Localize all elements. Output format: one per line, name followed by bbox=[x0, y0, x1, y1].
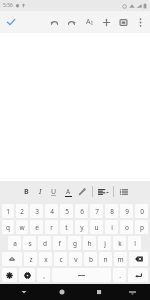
staticText: e bbox=[35, 223, 39, 232]
button[interactable]: 3 bbox=[30, 204, 43, 218]
staticText: a bbox=[13, 239, 17, 248]
button[interactable]: 5 bbox=[60, 204, 73, 218]
button[interactable]: Text color bbox=[61, 181, 75, 202]
staticText: 5 bbox=[65, 207, 69, 216]
button[interactable]: t bbox=[60, 220, 73, 234]
button[interactable]: Home bbox=[49, 284, 74, 300]
button[interactable]: s bbox=[23, 236, 36, 250]
button[interactable]: Back bbox=[12, 284, 36, 300]
button[interactable]: More options bbox=[132, 11, 148, 33]
button[interactable]: f bbox=[53, 236, 66, 250]
button[interactable]: l bbox=[128, 236, 141, 250]
button[interactable]: Add bbox=[98, 11, 115, 33]
staticText: n bbox=[103, 255, 108, 264]
staticText: , bbox=[43, 271, 45, 280]
button[interactable]: x bbox=[39, 252, 52, 266]
staticText: 5:56 bbox=[3, 2, 13, 9]
button[interactable]: y bbox=[75, 220, 88, 234]
button[interactable]: List bbox=[117, 181, 131, 202]
button[interactable]: 2 bbox=[16, 204, 28, 218]
button[interactable]: Undo bbox=[46, 11, 63, 33]
button[interactable]: 7 bbox=[90, 204, 103, 218]
button[interactable]: q bbox=[2, 220, 14, 234]
staticText: I bbox=[91, 20, 93, 27]
button[interactable]: 4 bbox=[45, 204, 58, 218]
button[interactable]: o bbox=[120, 220, 133, 234]
button[interactable]: r bbox=[45, 220, 58, 234]
staticText: 7 bbox=[95, 207, 99, 216]
button[interactable]: Backspace bbox=[129, 252, 148, 266]
staticText: g bbox=[73, 239, 77, 248]
staticText: U bbox=[51, 187, 57, 197]
button[interactable]: Shift bbox=[2, 252, 22, 266]
button[interactable]: Formatting bbox=[80, 11, 98, 33]
button[interactable]: Enter bbox=[128, 268, 148, 282]
button[interactable]: Recents bbox=[87, 284, 112, 300]
button[interactable]: Done bbox=[0, 11, 22, 33]
staticText: w bbox=[19, 223, 25, 232]
staticText: v bbox=[74, 255, 78, 264]
button[interactable]: v bbox=[69, 252, 82, 266]
staticText: 3 bbox=[35, 207, 39, 216]
staticText: B bbox=[24, 187, 29, 197]
staticText: r bbox=[50, 223, 53, 232]
button[interactable]: , bbox=[37, 268, 50, 282]
button[interactable]: Bold bbox=[19, 181, 33, 202]
button[interactable]: Italic bbox=[33, 181, 47, 202]
button[interactable]: Redo bbox=[63, 11, 80, 33]
button[interactable]: e bbox=[30, 220, 43, 234]
button[interactable]: k bbox=[113, 236, 126, 250]
button[interactable]: h bbox=[83, 236, 96, 250]
button[interactable]: a bbox=[8, 236, 21, 250]
button[interactable]: 6 bbox=[75, 204, 88, 218]
staticText: j bbox=[104, 239, 106, 248]
button[interactable]: . bbox=[113, 268, 126, 282]
button[interactable]: Settings bbox=[19, 268, 35, 282]
staticText: A bbox=[66, 187, 71, 196]
staticText: k bbox=[118, 239, 122, 248]
staticText: h bbox=[87, 239, 92, 248]
button[interactable]: Emoji bbox=[2, 268, 17, 282]
button[interactable]: 1 bbox=[2, 204, 14, 218]
button[interactable]: j bbox=[98, 236, 111, 250]
staticText: s bbox=[28, 239, 32, 248]
staticText: b bbox=[89, 255, 93, 264]
staticText: i bbox=[111, 223, 113, 232]
button[interactable]: 8 bbox=[105, 204, 118, 218]
button[interactable]: i bbox=[105, 220, 118, 234]
staticText: 9 bbox=[125, 207, 129, 216]
staticText: x bbox=[44, 255, 48, 264]
staticText: z bbox=[29, 255, 33, 264]
staticText: c bbox=[59, 255, 63, 264]
button[interactable]: Hide keyboard bbox=[120, 284, 145, 300]
staticText: u bbox=[94, 223, 99, 232]
button[interactable]: m bbox=[114, 252, 127, 266]
staticText: y bbox=[80, 223, 84, 232]
button[interactable]: u bbox=[90, 220, 103, 234]
staticText: A bbox=[86, 17, 91, 27]
staticText: 0 bbox=[140, 207, 144, 216]
button[interactable]: Highlight bbox=[75, 181, 89, 202]
staticText: 2 bbox=[20, 207, 24, 216]
button[interactable]: p bbox=[135, 220, 148, 234]
button[interactable]: Reminder bbox=[115, 11, 132, 33]
button[interactable]: Underline bbox=[47, 181, 61, 202]
button[interactable]: w bbox=[16, 220, 28, 234]
button[interactable]: d bbox=[38, 236, 51, 250]
button[interactable]: b bbox=[84, 252, 97, 266]
staticText: 8 bbox=[110, 207, 114, 216]
staticText: d bbox=[43, 239, 47, 248]
button[interactable]: g bbox=[68, 236, 81, 250]
button[interactable]: Space bbox=[52, 268, 111, 282]
button[interactable]: n bbox=[99, 252, 112, 266]
button[interactable]: 9 bbox=[120, 204, 133, 218]
button[interactable]: 0 bbox=[135, 204, 148, 218]
staticText: t bbox=[65, 223, 68, 232]
button[interactable]: Alignment bbox=[96, 181, 110, 202]
button[interactable]: c bbox=[54, 252, 67, 266]
staticText: f bbox=[58, 239, 61, 248]
staticText: 1 bbox=[6, 207, 10, 216]
staticText: 6 bbox=[80, 207, 84, 216]
button[interactable]: z bbox=[24, 252, 37, 266]
